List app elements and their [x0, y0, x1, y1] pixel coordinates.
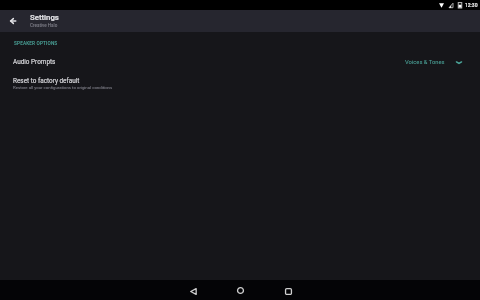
button[interactable]: Navigate up: [4, 12, 22, 30]
staticText: Settings: [30, 13, 59, 22]
button[interactable]: Audio Prompts: [0, 53, 480, 71]
staticText: Audio Prompts: [13, 58, 56, 66]
staticText: SPEAKER OPTIONS: [14, 41, 58, 47]
staticText: Reset to factory default: [13, 77, 80, 85]
button[interactable]: Back: [181, 281, 205, 300]
button[interactable]: Home: [228, 280, 252, 300]
staticText: Restore all your configurations to origi…: [13, 85, 113, 90]
button[interactable]: Recent apps: [276, 281, 300, 300]
button[interactable]: Reset to factory default: [0, 75, 480, 94]
staticText: 12:30: [465, 2, 478, 8]
staticText: Creative Halo: [30, 23, 58, 28]
staticText: Voices & Tones: [405, 59, 445, 66]
